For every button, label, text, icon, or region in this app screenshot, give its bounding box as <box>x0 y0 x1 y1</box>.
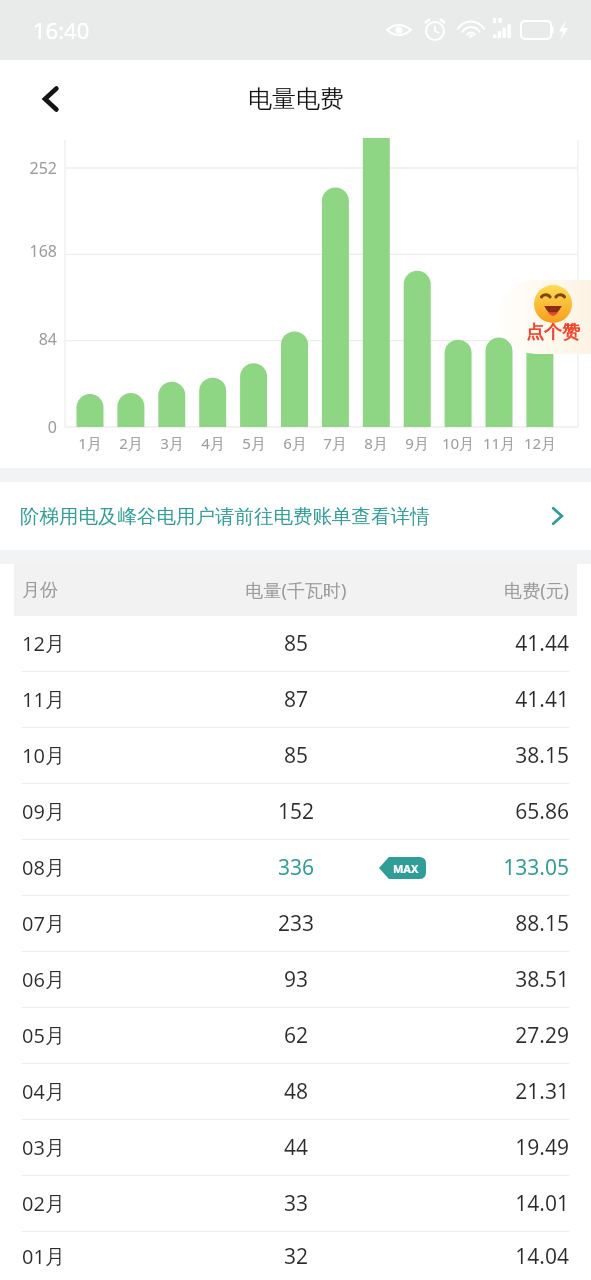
staticText: 10月 <box>22 742 191 769</box>
staticText: 65.86 <box>401 797 569 826</box>
staticText: 62 <box>284 1021 309 1050</box>
staticText: 12月 <box>22 630 191 657</box>
staticText: 04月 <box>22 1078 191 1105</box>
staticText: MAX <box>393 861 419 876</box>
staticText: 01月 <box>22 1243 191 1270</box>
staticText: 阶梯用电及峰谷电用户请前往电费账单查看详情 <box>20 504 430 529</box>
staticText: 44 <box>284 1133 309 1162</box>
staticText: 133.05 <box>401 853 569 882</box>
staticText: 88.15 <box>401 909 569 938</box>
staticText: 4月 <box>191 433 235 453</box>
staticText: 11月 <box>477 433 521 453</box>
staticText: 41.44 <box>401 629 569 658</box>
staticText: 85 <box>284 741 309 770</box>
staticText: 03月 <box>22 1134 191 1161</box>
button[interactable]: 02月 <box>0 1176 591 1232</box>
staticText: 16:40 <box>33 15 90 45</box>
staticText: 41.41 <box>401 685 569 714</box>
staticText: 08月 <box>22 854 191 881</box>
staticText: 09月 <box>22 798 191 825</box>
staticText: 0 <box>0 416 57 438</box>
staticText: 27.29 <box>401 1021 569 1050</box>
staticText: 87 <box>284 685 309 714</box>
button[interactable]: 04月 <box>0 1064 591 1120</box>
staticText: 152 <box>278 797 315 826</box>
staticText: 38.51 <box>401 965 569 994</box>
button[interactable]: 06月 <box>0 952 591 1008</box>
staticText: 252 <box>0 157 57 179</box>
staticText: 38.15 <box>401 741 569 770</box>
button[interactable]: 03月 <box>0 1120 591 1176</box>
staticText: 6月 <box>273 433 317 453</box>
button[interactable]: 07月 <box>0 896 591 952</box>
staticText: 2月 <box>109 433 153 453</box>
staticText: 14.04 <box>401 1242 569 1271</box>
staticText: 7月 <box>313 433 357 453</box>
staticText: 电量电费 <box>248 84 344 114</box>
staticText: 11月 <box>22 686 191 713</box>
staticText: 14.01 <box>401 1189 569 1218</box>
staticText: 168 <box>0 240 57 262</box>
staticText: 点个赞 <box>526 321 580 344</box>
button[interactable]: 10月 <box>0 728 591 784</box>
staticText: 07月 <box>22 910 191 937</box>
staticText: 10月 <box>436 433 480 453</box>
button[interactable]: 12月 <box>0 616 591 672</box>
staticText: 3月 <box>150 433 194 453</box>
staticText: 33 <box>284 1189 309 1218</box>
button[interactable]: 05月 <box>0 1008 591 1064</box>
staticText: 84 <box>0 328 57 350</box>
button[interactable]: 01月 <box>0 1232 591 1280</box>
staticText: 月份 <box>22 579 191 602</box>
staticText: 93 <box>284 965 309 994</box>
staticText: 233 <box>278 909 315 938</box>
button[interactable]: 11月 <box>0 672 591 728</box>
staticText: 19.49 <box>401 1133 569 1162</box>
button[interactable]: 09月 <box>0 784 591 840</box>
staticText: 336 <box>278 853 315 882</box>
staticText: 06月 <box>22 966 191 993</box>
staticText: 5月 <box>232 433 276 453</box>
staticText: 8月 <box>354 433 398 453</box>
staticText: 1月 <box>68 433 112 453</box>
button[interactable]: 点个赞 <box>499 280 591 354</box>
button[interactable]: 08月 <box>0 840 591 896</box>
staticText: 电费(元) <box>401 578 569 603</box>
staticText: 9月 <box>395 433 439 453</box>
staticText: 02月 <box>22 1190 191 1217</box>
staticText: 32 <box>284 1242 309 1271</box>
staticText: 电量(千瓦时) <box>191 578 401 603</box>
staticText: 48 <box>284 1077 309 1106</box>
button[interactable]: 阶梯用电及峰谷电用户请前往电费账单查看详情 <box>0 482 591 550</box>
staticText: 12月 <box>518 433 562 453</box>
staticText: 85 <box>284 629 309 658</box>
button[interactable]: Back <box>26 74 76 124</box>
staticText: 21.31 <box>401 1077 569 1106</box>
staticText: 05月 <box>22 1022 191 1049</box>
